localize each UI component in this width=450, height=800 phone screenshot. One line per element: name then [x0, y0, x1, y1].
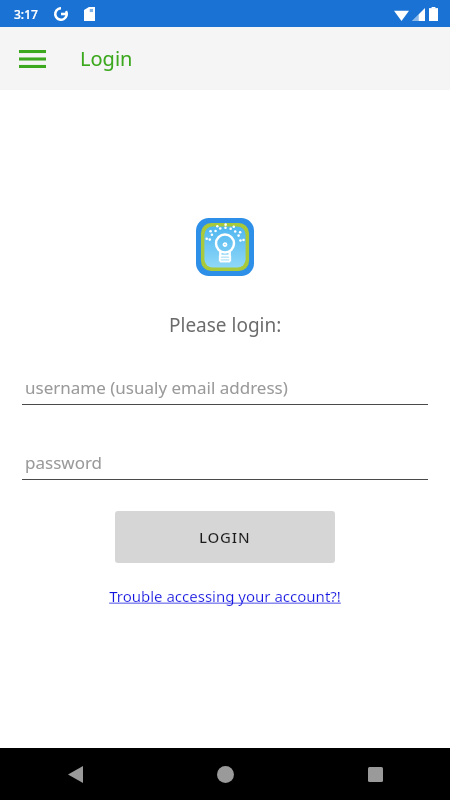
button[interactable]: LOGIN [115, 511, 335, 563]
button[interactable]: username (usualy email address) [22, 376, 428, 405]
button[interactable]: Back [0, 748, 150, 800]
button[interactable]: Recent apps [300, 748, 450, 800]
button[interactable]: password [22, 451, 428, 480]
staticText: Trouble accessing your account?! [109, 586, 341, 606]
button[interactable]: Open navigation menu [8, 35, 56, 83]
staticText: username (usualy email address) [25, 376, 288, 399]
staticText: Login [80, 45, 133, 72]
button[interactable]: Trouble accessing your account?! [109, 586, 341, 606]
staticText: 3:17 [14, 6, 38, 22]
staticText: LOGIN [199, 527, 251, 547]
staticText: password [25, 451, 103, 474]
staticText: Please login: [169, 312, 282, 338]
button[interactable]: Home [150, 748, 300, 800]
